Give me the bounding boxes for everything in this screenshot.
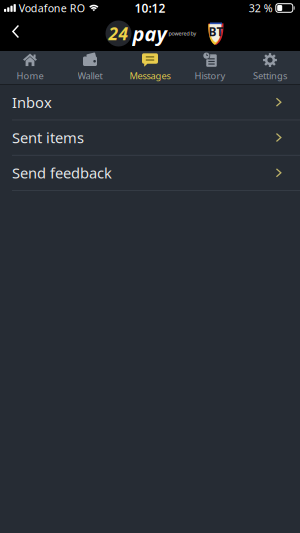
staticText: 32 % [249, 1, 273, 15]
button[interactable]: Settings [240, 51, 300, 84]
button[interactable]: Sent items [0, 120, 300, 156]
staticText: Messages [129, 70, 170, 82]
staticText: 24 [108, 22, 128, 45]
staticText: Inbox [12, 93, 52, 112]
staticText: Send feedback [12, 163, 112, 183]
staticText: powered by [168, 30, 196, 37]
button[interactable]: History [180, 51, 240, 84]
staticText: Settings [253, 70, 287, 82]
button[interactable]: Back [0, 17, 19, 50]
button[interactable]: Inbox [0, 85, 300, 120]
staticText: BT [208, 23, 223, 39]
staticText: Wallet [77, 70, 102, 82]
staticText: Vodafone RO [19, 1, 85, 15]
staticText: History [194, 70, 225, 82]
staticText: pay [132, 20, 166, 47]
button[interactable]: Home [0, 51, 60, 84]
staticText: Home [16, 70, 43, 82]
staticText: Sent items [12, 128, 84, 147]
button[interactable]: Wallet [60, 51, 120, 84]
button[interactable]: Send feedback [0, 156, 300, 191]
button[interactable]: Messages [120, 51, 180, 84]
staticText: 10:12 [134, 0, 165, 16]
